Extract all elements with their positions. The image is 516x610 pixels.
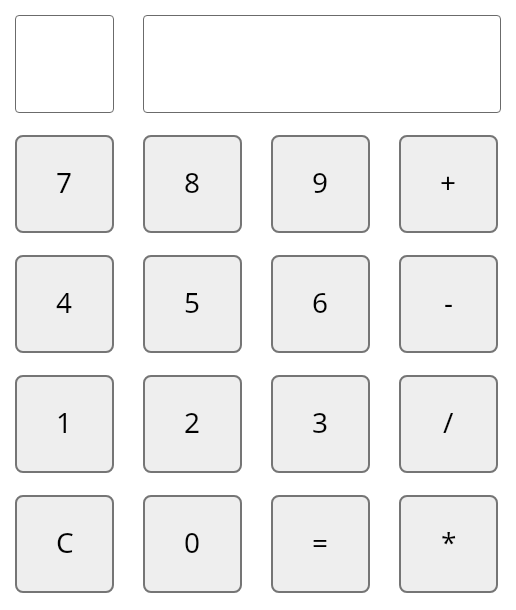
staticText: 7 [56, 163, 73, 201]
button[interactable]: 2 [143, 375, 242, 473]
staticText: 3 [312, 403, 329, 441]
button[interactable]: 3 [271, 375, 370, 473]
button[interactable]: - [399, 255, 498, 353]
button[interactable]: 5 [143, 255, 242, 353]
staticText: 6 [312, 283, 329, 321]
button[interactable]: 7 [15, 135, 114, 233]
staticText: 4 [56, 283, 73, 321]
staticText: / [443, 403, 454, 441]
button[interactable]: 1 [15, 375, 114, 473]
button[interactable]: = [271, 495, 370, 593]
staticText: C [56, 523, 74, 561]
staticText: 1 [56, 403, 73, 441]
button[interactable]: 0 [143, 495, 242, 593]
button[interactable]: 4 [15, 255, 114, 353]
button[interactable]: * [399, 495, 498, 593]
staticText: = [312, 523, 329, 561]
staticText: 5 [184, 283, 201, 321]
button[interactable]: / [399, 375, 498, 473]
button[interactable]: + [399, 135, 498, 233]
staticText: * [441, 523, 457, 561]
staticText: + [440, 163, 457, 201]
staticText: - [444, 283, 454, 321]
button[interactable]: 8 [143, 135, 242, 233]
button[interactable]: 9 [271, 135, 370, 233]
button[interactable]: 6 [271, 255, 370, 353]
staticText: 9 [312, 163, 329, 201]
staticText: 0 [184, 523, 201, 561]
staticText: 2 [184, 403, 201, 441]
button[interactable] [143, 15, 501, 113]
staticText: 8 [184, 163, 201, 201]
button[interactable]: C [15, 495, 114, 593]
